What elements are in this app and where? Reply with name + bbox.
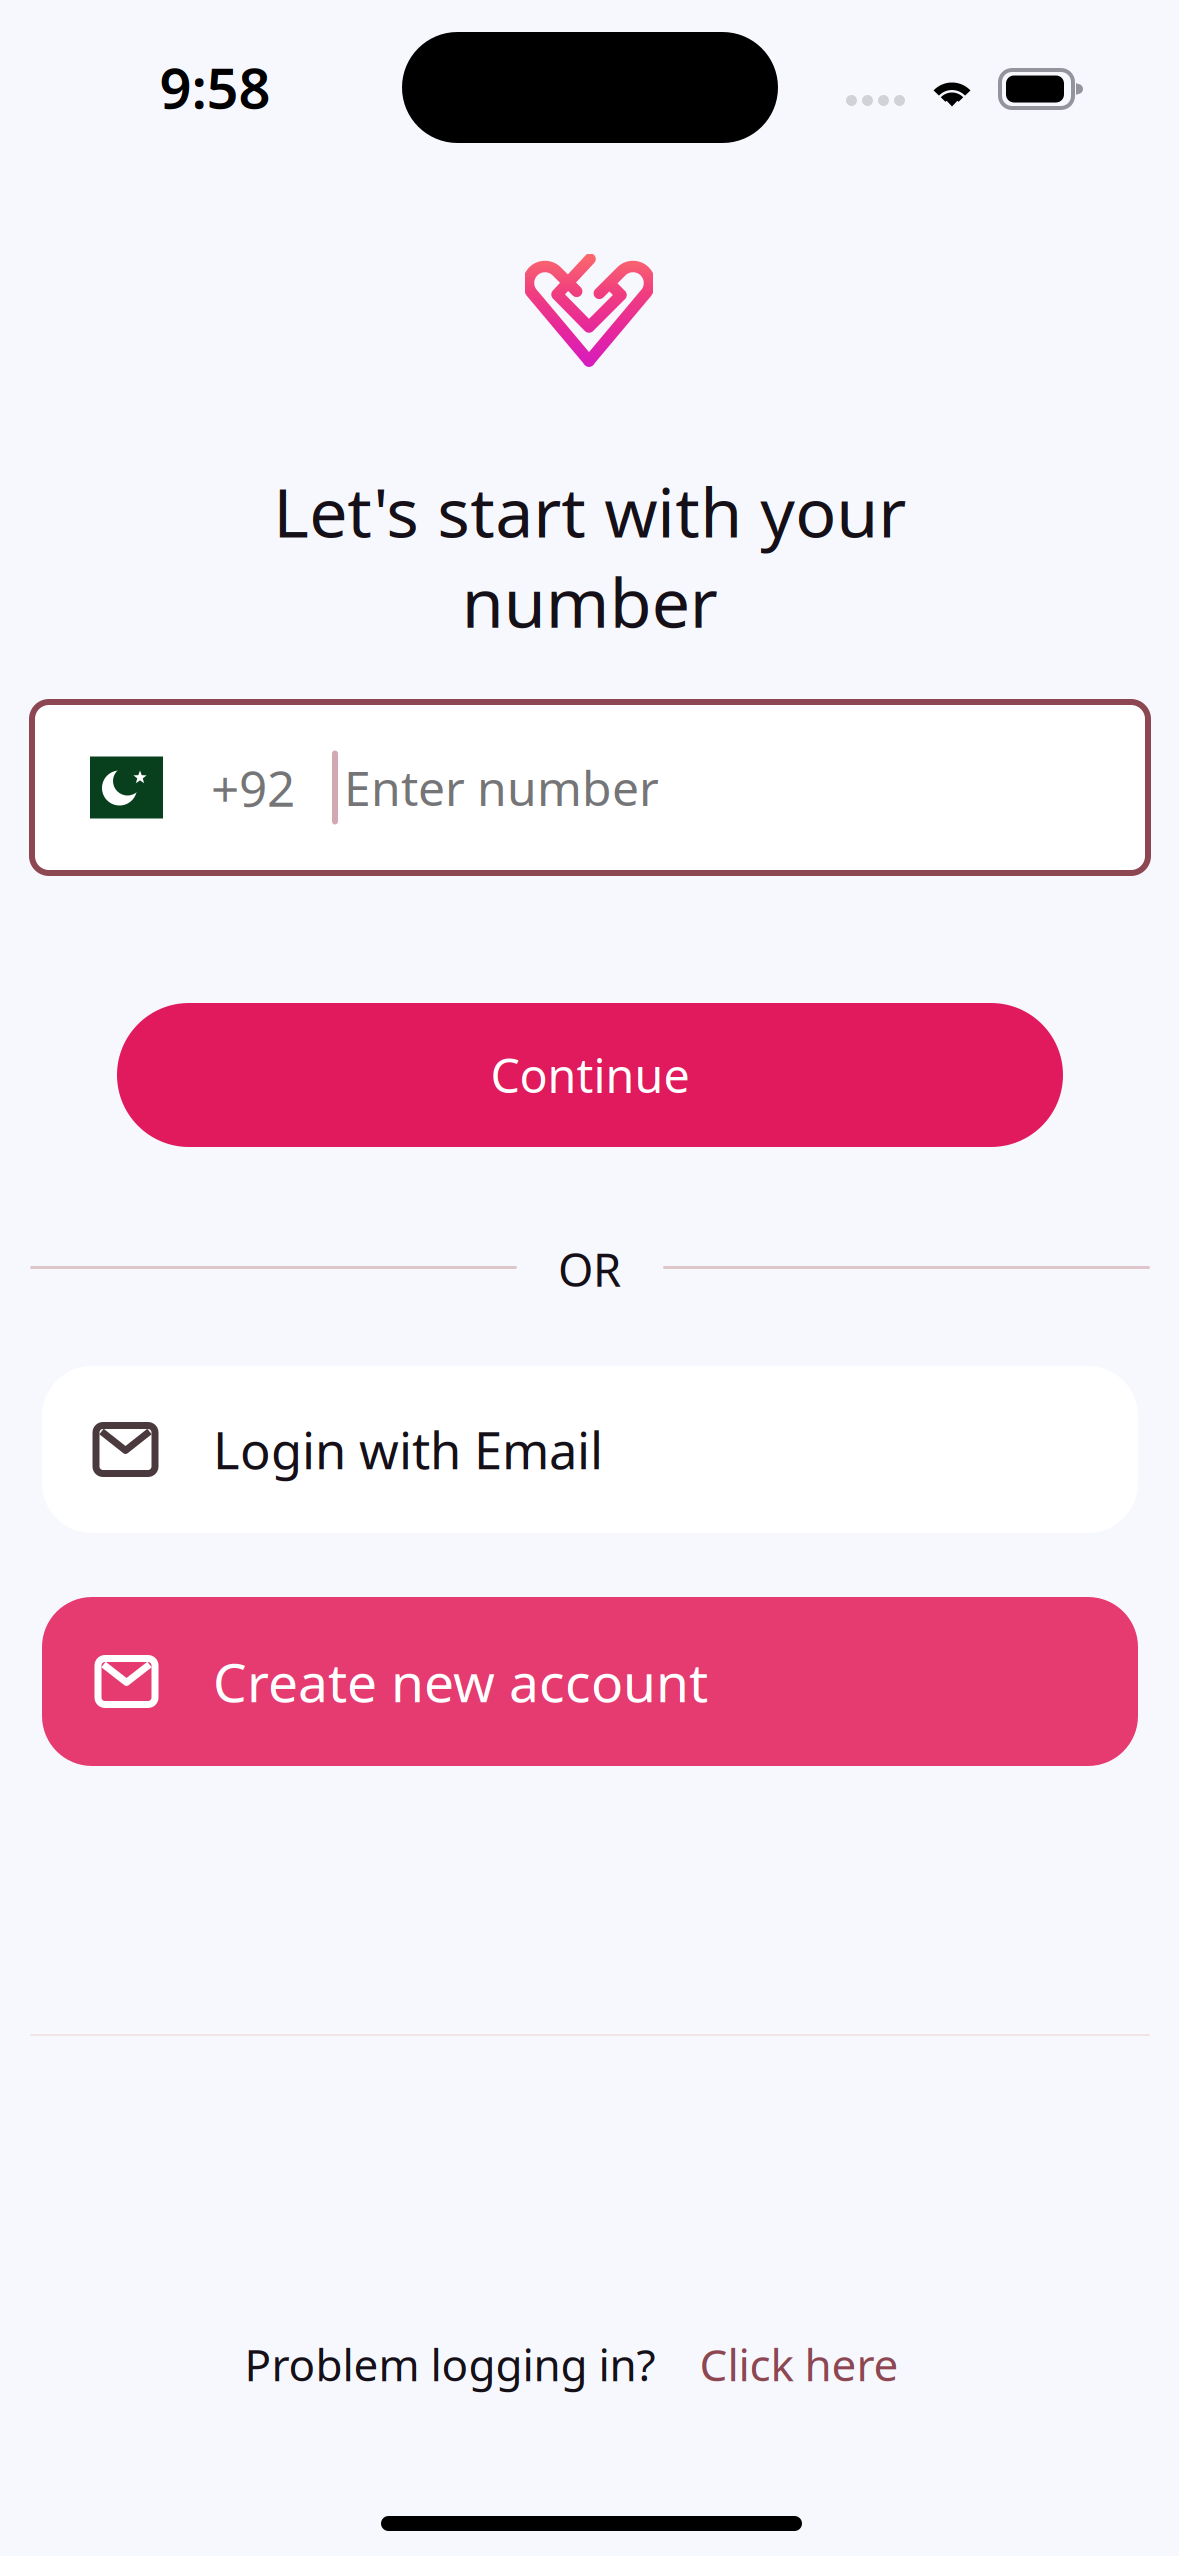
button[interactable]: Create new account [42,1597,1138,1766]
staticText: Problem logging in? [244,2335,655,2393]
button[interactable]: Problem logging in? [0,2335,1143,2393]
button[interactable]: Login with Email [42,1366,1138,1533]
button[interactable]: Continue [117,1003,1063,1147]
staticText: Let's start with your number [273,466,906,647]
staticText: Continue [490,1044,689,1106]
staticText: Click here [699,2335,898,2393]
staticText: Create new account [213,1646,708,1717]
staticText: 9:58 [159,50,270,124]
staticText: +92 [211,755,295,820]
staticText: Enter number [344,756,659,819]
staticText: Login with Email [213,1416,603,1483]
staticText: OR [558,1239,621,1299]
